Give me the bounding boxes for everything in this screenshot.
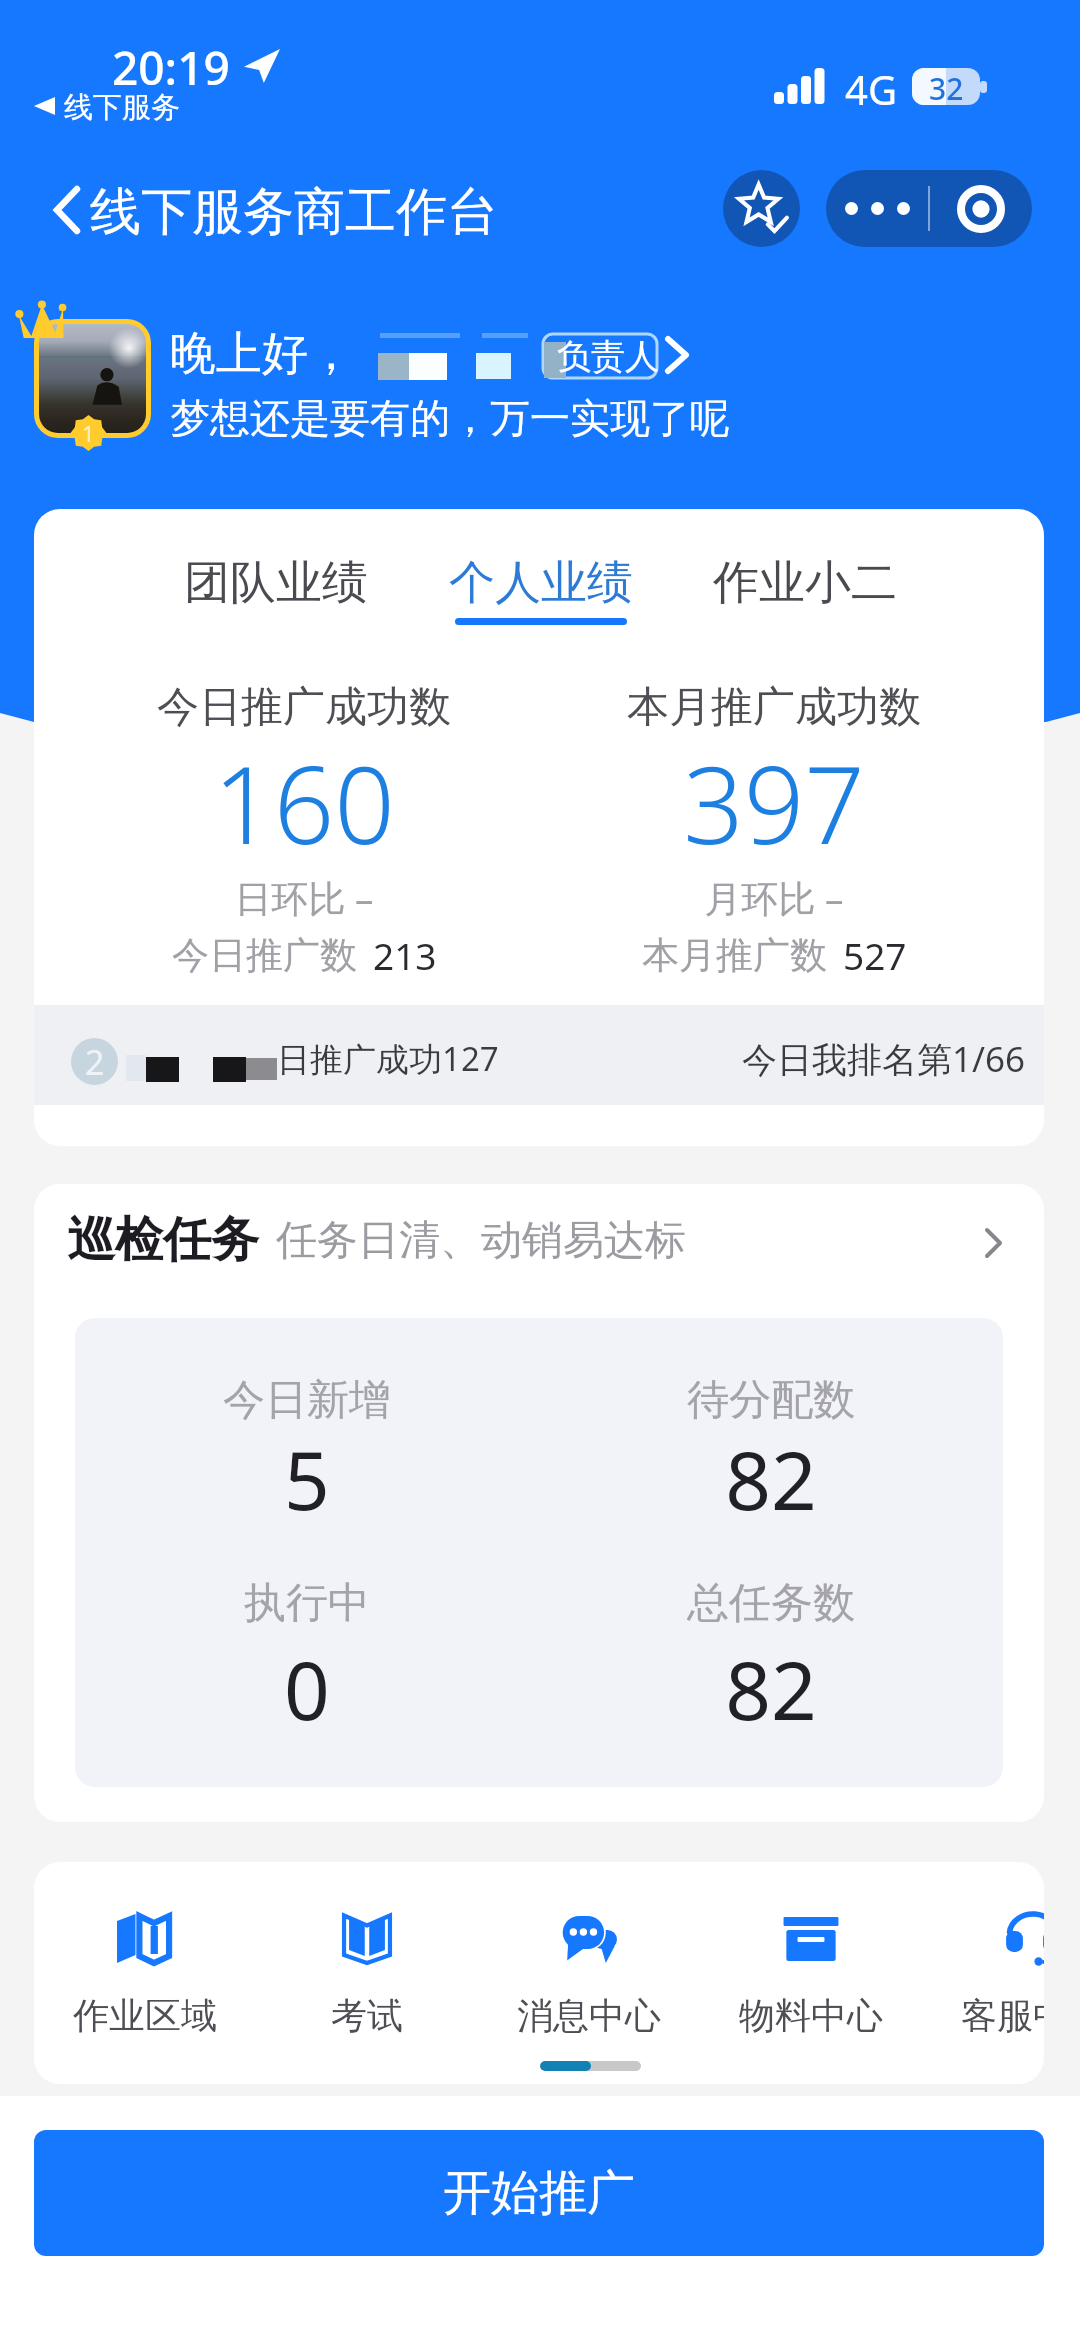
staticText: 巡检任务 <box>67 1210 259 1270</box>
button[interactable]: 收藏 <box>723 170 800 247</box>
button[interactable]: 更多 <box>826 170 928 247</box>
button[interactable]: 考试 <box>257 1913 477 2038</box>
staticText: 82 <box>725 1424 817 1533</box>
staticText: 今日推广数 <box>172 932 357 979</box>
staticText: 月环比 – <box>704 872 844 923</box>
staticText: 1 <box>82 418 95 448</box>
button[interactable]: 客服中心 <box>923 1913 1044 2038</box>
staticText: 2 <box>85 1039 105 1085</box>
staticText: 客服中心 <box>961 1993 1044 2038</box>
staticText: 线下服务 <box>64 89 180 126</box>
button[interactable]: 消息中心 <box>479 1913 699 2038</box>
button[interactable]: 2 <box>34 1005 1044 1105</box>
staticText: 32 <box>929 68 964 105</box>
button[interactable]: 开始推广 <box>34 2130 1044 2256</box>
staticText: 消息中心 <box>517 1993 661 2038</box>
button[interactable]: 负责人 <box>543 334 657 378</box>
staticText: 日推广成功127 <box>277 1036 499 1081</box>
button[interactable]: 巡检任务 <box>34 1184 1044 1318</box>
staticText: 晚上好， <box>170 325 354 383</box>
button[interactable]: 作业区域 <box>35 1913 255 2038</box>
staticText: 527 <box>843 930 907 980</box>
staticText: 82 <box>725 1634 817 1743</box>
staticText: 今日我排名第1/66 <box>742 1035 1026 1083</box>
staticText: 个人业绩 <box>449 554 633 612</box>
staticText: 213 <box>373 930 437 980</box>
button[interactable]: 团队业绩 <box>181 539 371 634</box>
staticText: 日环比 – <box>234 872 374 923</box>
staticText: 考试 <box>331 1993 403 2038</box>
staticText: 4G <box>845 62 897 116</box>
button[interactable]: 个人头像 <box>34 319 151 438</box>
staticText: 160 <box>213 731 395 875</box>
staticText: 397 <box>683 731 865 875</box>
button[interactable]: 物料中心 <box>701 1913 921 2038</box>
staticText: 作业小二 <box>713 554 897 612</box>
staticText: 任务日清、动销易达标 <box>276 1215 686 1267</box>
staticText: 开始推广 <box>443 2163 635 2223</box>
staticText: 5 <box>284 1424 330 1533</box>
staticText: 0 <box>284 1634 330 1743</box>
staticText: 线下服务商工作台 <box>90 180 498 244</box>
button[interactable]: 关闭小程序 <box>930 170 1032 247</box>
button[interactable]: 个人业绩 <box>446 539 636 634</box>
staticText: 今日推广成功数 <box>157 681 451 734</box>
staticText: 团队业绩 <box>184 554 368 612</box>
staticText: 本月推广成功数 <box>627 681 921 734</box>
staticText: 总任务数 <box>687 1577 855 1630</box>
button[interactable]: 作业小二 <box>710 539 900 634</box>
staticText: 梦想还是要有的，万一实现了呢 <box>170 393 730 443</box>
staticText: 本月推广数 <box>642 932 827 979</box>
staticText: 负责人 <box>557 335 659 378</box>
staticText: 待分配数 <box>687 1374 855 1427</box>
staticText: 物料中心 <box>739 1993 883 2038</box>
staticText: 作业区域 <box>73 1993 217 2038</box>
staticText: 今日新增 <box>223 1374 391 1427</box>
staticText: 执行中 <box>244 1577 370 1630</box>
button[interactable]: 返回 <box>27 162 107 258</box>
staticText: 20:19 <box>112 36 230 99</box>
